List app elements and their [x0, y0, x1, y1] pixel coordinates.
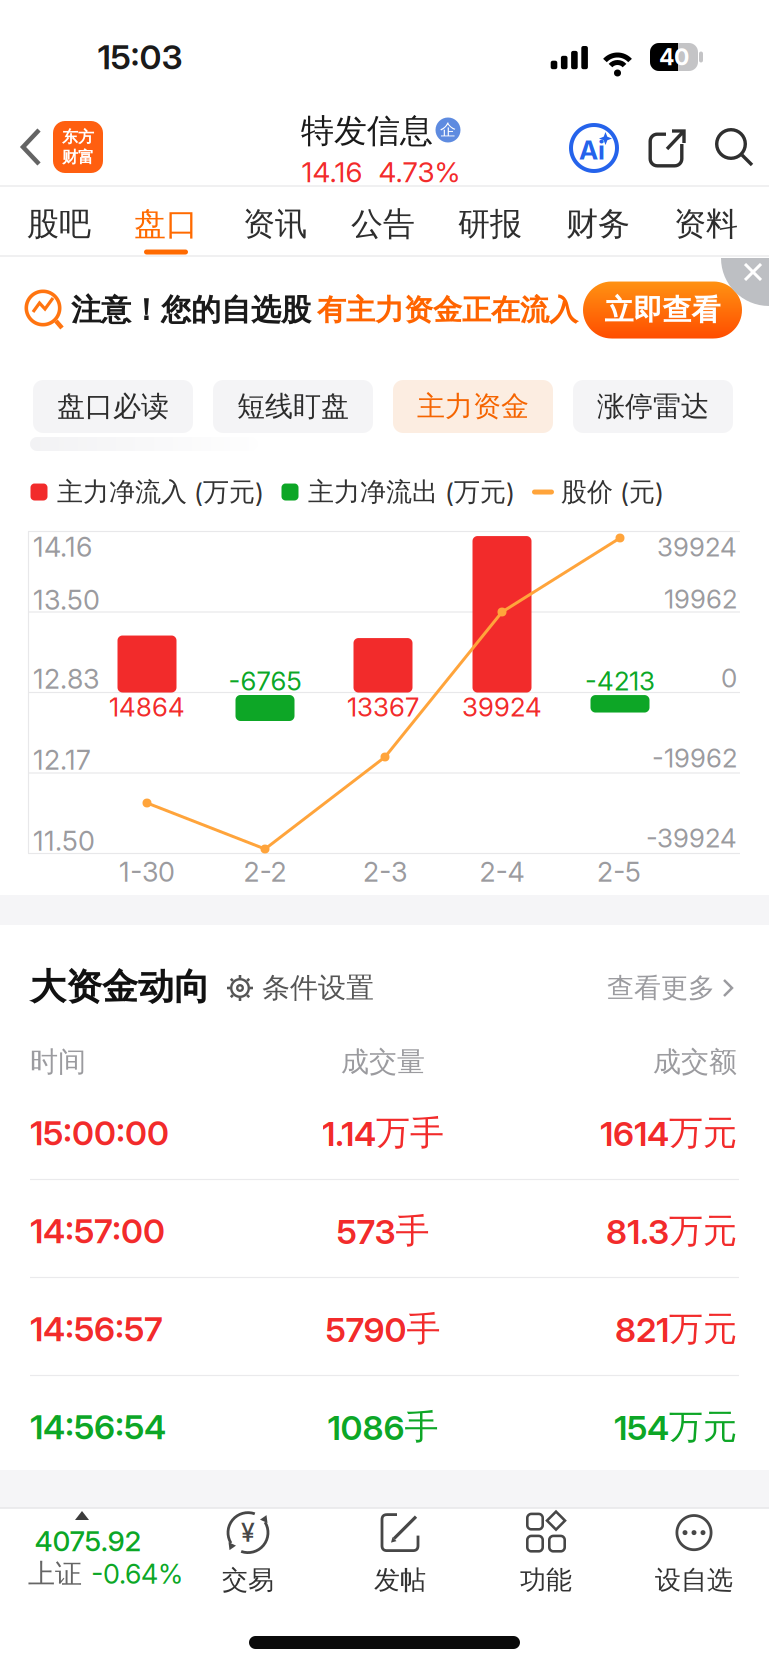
button[interactable]: Close — [737, 256, 769, 288]
staticText: -39924 — [646, 822, 737, 854]
staticText: 查看更多 — [607, 971, 715, 1005]
button[interactable]: Share — [646, 126, 690, 170]
staticText: ¥ — [241, 1517, 255, 1548]
staticText: 时间 — [30, 1044, 86, 1080]
staticText: 财富 — [62, 147, 94, 167]
staticText: 1614万元 — [600, 1112, 737, 1154]
button[interactable]: Back — [9, 125, 53, 169]
staticText: 特发信息 — [301, 110, 433, 152]
staticText: 股吧 — [27, 204, 91, 244]
button[interactable]: 15:00:00 — [0, 1084, 769, 1182]
staticText: 2-4 — [479, 856, 524, 888]
staticText: 39924 — [657, 531, 737, 563]
staticText: -4213 — [585, 665, 655, 697]
button[interactable]: Search — [712, 125, 756, 169]
staticText: 成交额 — [653, 1044, 737, 1080]
staticText: 1.14万手 — [322, 1112, 444, 1154]
staticText: 11.50 — [33, 825, 95, 857]
staticText: 有主力资金正在流入 — [317, 292, 578, 328]
button[interactable]: ¥ — [188, 1508, 308, 1598]
button[interactable]: 4075.92 — [0, 1510, 180, 1586]
staticText: 财务 — [566, 204, 630, 244]
staticText: 2-2 — [243, 856, 286, 888]
button[interactable]: 资料 — [656, 191, 756, 257]
button[interactable]: 资讯 — [225, 191, 325, 257]
staticText: 2-3 — [363, 856, 407, 888]
button[interactable]: 财务 — [548, 191, 648, 257]
button[interactable]: 公告 — [333, 191, 433, 257]
staticText: 主力净流入 (万元) — [57, 476, 264, 508]
staticText: 上证 — [28, 1557, 82, 1591]
button[interactable]: 股吧 — [9, 191, 109, 257]
staticText: 交易 — [222, 1564, 274, 1596]
staticText: 0 — [721, 662, 737, 694]
staticText: 14864 — [109, 691, 185, 723]
staticText: 大资金动向 — [30, 964, 210, 1010]
button[interactable]: 14:56:57 — [0, 1280, 769, 1378]
staticText: 14.16 4.73% — [301, 155, 460, 189]
staticText: 573手 — [336, 1210, 429, 1252]
staticText: 公告 — [351, 204, 415, 244]
staticText: 81.3万元 — [606, 1210, 737, 1252]
staticText: 154万元 — [614, 1406, 737, 1448]
staticText: -6765 — [228, 665, 301, 697]
staticText: 1-30 — [119, 856, 175, 888]
button[interactable]: 查看更多 — [607, 966, 737, 1010]
staticText: 短线盯盘 — [237, 389, 349, 424]
button[interactable]: 14:57:00 — [0, 1182, 769, 1280]
staticText: 发帖 — [374, 1564, 426, 1596]
button[interactable]: 研报 — [440, 191, 540, 257]
staticText: 注意！您的自选股 — [71, 291, 311, 329]
button[interactable]: 功能 — [486, 1508, 606, 1598]
staticText: 立即查看 — [604, 292, 720, 328]
staticText: Ai — [579, 134, 605, 166]
button[interactable]: Ai — [567, 121, 621, 175]
staticText: 2-5 — [597, 856, 641, 888]
staticText: 主力资金 — [417, 389, 529, 424]
button[interactable]: 涨停雷达 — [573, 380, 733, 433]
staticText: 盘口必读 — [57, 389, 169, 424]
button[interactable]: 设自选 — [634, 1508, 754, 1598]
staticText: 5790手 — [325, 1308, 440, 1350]
staticText: 条件设置 — [262, 970, 374, 1006]
button[interactable]: 条件设置 — [226, 966, 374, 1010]
staticText: 14:56:57 — [30, 1308, 163, 1349]
staticText: 盘口 — [134, 204, 198, 244]
staticText: 40 — [659, 43, 689, 71]
staticText: 1086手 — [327, 1406, 438, 1448]
button[interactable]: 东方财富 — [51, 119, 105, 175]
staticText: 15:03 — [97, 36, 182, 77]
button[interactable]: 发帖 — [340, 1508, 460, 1598]
staticText: 成交量 — [341, 1044, 425, 1080]
button[interactable]: 立即查看 — [583, 281, 742, 338]
staticText: 股价 (元) — [561, 476, 664, 508]
staticText: 14:56:54 — [30, 1406, 166, 1447]
button[interactable]: 短线盯盘 — [213, 380, 373, 433]
staticText: 设自选 — [655, 1564, 733, 1596]
staticText: -0.64% — [91, 1558, 183, 1590]
staticText: 15:00:00 — [30, 1112, 169, 1153]
staticText: 821万元 — [615, 1308, 737, 1350]
button[interactable]: 盘口必读 — [33, 380, 193, 433]
staticText: 研报 — [458, 204, 522, 244]
staticText: 功能 — [520, 1564, 572, 1596]
staticText: 14:57:00 — [30, 1210, 165, 1251]
staticText: 4075.92 — [34, 1524, 141, 1558]
staticText: 13367 — [347, 691, 419, 723]
staticText: 12.83 — [33, 663, 99, 695]
button[interactable]: 14:56:54 — [0, 1378, 769, 1476]
staticText: 企 — [440, 120, 456, 140]
button[interactable]: 主力资金 — [393, 380, 553, 433]
staticText: 资讯 — [243, 204, 307, 244]
staticText: 涨停雷达 — [597, 389, 709, 424]
staticText: 东方 — [62, 127, 94, 147]
staticText: 19962 — [664, 583, 737, 615]
staticText: 主力净流出 (万元) — [308, 476, 515, 508]
staticText: 13.50 — [33, 584, 100, 616]
staticText: 14.16 — [33, 531, 92, 563]
staticText: 39924 — [462, 691, 542, 723]
staticText: 资料 — [674, 204, 738, 244]
staticText: -19962 — [652, 742, 737, 774]
button[interactable]: 盘口 — [116, 191, 216, 257]
staticText: 12.17 — [33, 744, 91, 776]
